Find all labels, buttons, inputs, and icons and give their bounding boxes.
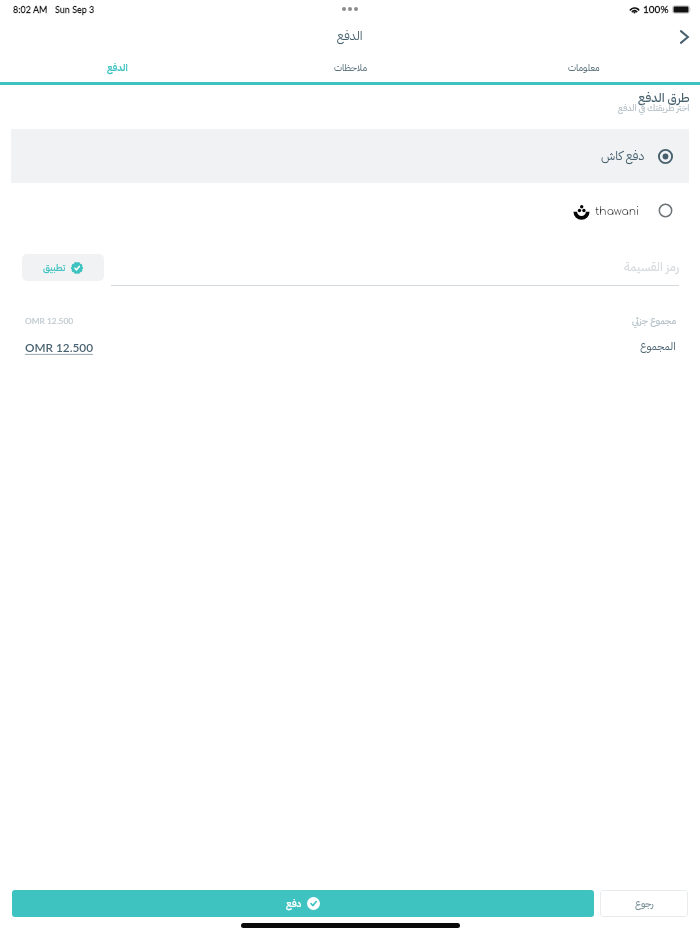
staticText: 100%: [643, 3, 669, 15]
staticText: OMR 12.500: [25, 316, 74, 326]
button[interactable]: تطبيق: [22, 254, 104, 281]
staticText: thawani: [595, 205, 640, 217]
staticText: Sun Sep 3: [55, 4, 95, 15]
staticText: رجوع: [635, 897, 654, 911]
button[interactable]: ملاحظات: [234, 57, 467, 82]
button[interactable]: thawani: [11, 190, 689, 230]
staticText: دفع: [286, 896, 302, 911]
staticText: معلومات: [568, 61, 600, 75]
staticText: المجموع: [640, 338, 676, 355]
button[interactable]: دفع كاش: [11, 129, 689, 183]
staticText: ملاحظات: [334, 61, 368, 75]
staticText: الدفع: [337, 26, 363, 45]
button[interactable]: الدفع: [0, 57, 234, 82]
staticText: 8:02 AM: [13, 4, 48, 15]
staticText: الدفع: [107, 61, 128, 75]
staticText: مجموع جزئي: [632, 314, 676, 328]
button[interactable]: Back: [668, 22, 700, 57]
staticText: OMR 12.500: [25, 340, 96, 354]
button[interactable]: دفع: [12, 890, 594, 917]
button[interactable]: رجوع: [600, 890, 688, 917]
staticText: رمز القسيمة: [111, 257, 679, 276]
button[interactable]: معلومات: [467, 57, 700, 82]
staticText: طرق الدفع: [638, 88, 690, 107]
staticText: دفع كاش: [601, 146, 645, 165]
staticText: تطبيق: [43, 261, 66, 275]
staticText: اختر طريقتك في الدفع: [618, 101, 690, 115]
